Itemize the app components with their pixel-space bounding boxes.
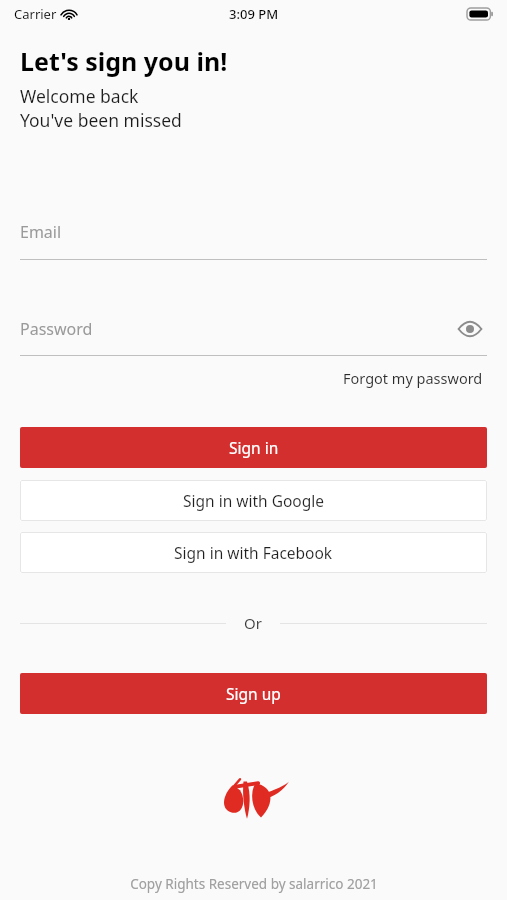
staticText: Copy Rights Reserved by salarrico 2021 — [130, 875, 378, 893]
staticText: Sign in with Facebook — [174, 542, 333, 563]
staticText: Sign up — [226, 683, 281, 704]
button[interactable]: Sign up — [20, 673, 487, 714]
staticText: Password — [20, 318, 93, 340]
staticText: Or — [244, 613, 262, 633]
button[interactable]: Sign in with Facebook — [20, 532, 487, 573]
staticText: Welcome back — [20, 84, 139, 108]
button[interactable]: Password — [20, 309, 487, 356]
staticText: Sign in — [229, 437, 279, 458]
staticText: Let's sign you in! — [20, 44, 228, 78]
button[interactable]: Email — [20, 212, 487, 260]
button[interactable]: Sign in — [20, 427, 487, 468]
staticText: Email — [20, 221, 62, 243]
button[interactable]: Show password — [453, 312, 487, 346]
button[interactable]: Forgot my password — [339, 364, 487, 392]
staticText: Carrier — [14, 5, 57, 23]
staticText: 3:09 PM — [229, 5, 279, 23]
button[interactable]: Sign in with Google — [20, 480, 487, 521]
staticText: Sign in with Google — [183, 490, 324, 511]
staticText: You've been missed — [20, 108, 182, 132]
